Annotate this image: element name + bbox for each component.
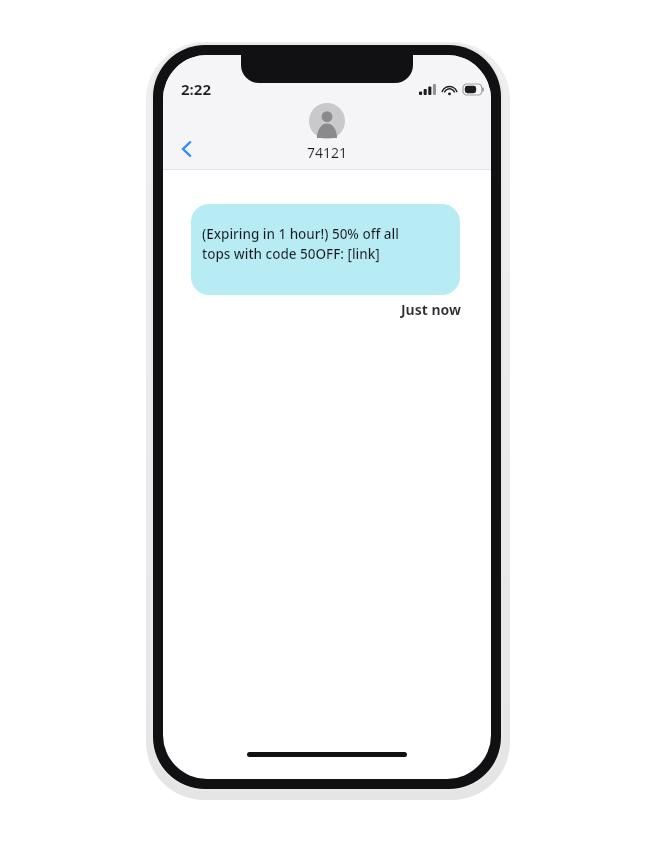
staticText: Just now [400, 300, 461, 319]
button[interactable]: Back [169, 131, 205, 167]
button[interactable]: (Expiring in 1 hour!) 50% off all tops w… [191, 204, 460, 295]
staticText: 74121 [307, 143, 348, 162]
staticText: (Expiring in 1 hour!) 50% off all tops w… [202, 225, 399, 263]
staticText: 2:22 [181, 79, 211, 99]
